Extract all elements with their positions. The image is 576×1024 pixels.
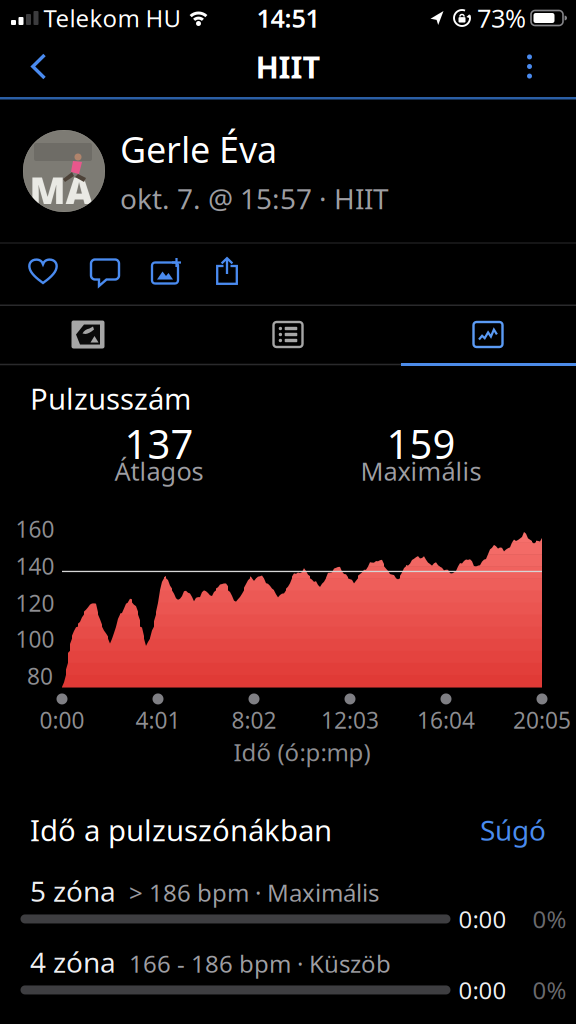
staticText: 140 — [15, 551, 54, 581]
staticText: Maximális — [360, 454, 481, 488]
staticText: 120 — [15, 588, 54, 618]
staticText: 137 — [124, 417, 193, 470]
staticText: Átlagos — [114, 454, 203, 488]
button[interactable]: Stats — [192, 306, 384, 363]
staticText: Pulzusszám — [30, 379, 191, 418]
staticText: 4 zóna — [30, 943, 116, 981]
staticText: 8:02 — [231, 705, 276, 735]
staticText: 0:00 — [458, 903, 506, 935]
staticText: 0% — [532, 974, 566, 1006]
staticText: Telekom HU — [43, 2, 181, 34]
staticText: 100 — [15, 624, 54, 654]
staticText: 0:00 — [458, 974, 506, 1006]
staticText: Idő (ó:p:mp) — [233, 736, 370, 768]
button[interactable]: Add photo — [119, 243, 182, 304]
staticText: HIIT — [255, 46, 320, 87]
staticText: 160 — [15, 514, 54, 544]
staticText: 80 — [27, 661, 53, 691]
button[interactable]: More — [527, 36, 576, 97]
staticText: 0:00 — [39, 705, 84, 735]
staticText: Idő a pulzuszónákban — [30, 810, 332, 849]
staticText: 14:51 — [256, 1, 319, 35]
button[interactable]: Back — [0, 36, 46, 96]
staticText: Gerle Éva — [120, 125, 277, 173]
button[interactable]: Charts — [384, 306, 576, 363]
staticText: 20:05 — [513, 705, 571, 735]
staticText: > 186 bpm · Maximális — [129, 877, 379, 908]
staticText: 12:03 — [321, 705, 379, 735]
staticText: 5 zóna — [30, 872, 116, 910]
button[interactable]: Comment — [58, 243, 119, 304]
staticText: okt. 7. @ 15:57 · HIIT — [120, 180, 389, 217]
staticText: 4:01 — [135, 705, 180, 735]
staticText: Súgó — [480, 811, 546, 849]
staticText: 166 - 186 bpm · Küszöb — [129, 948, 391, 979]
button[interactable]: Share — [182, 244, 238, 304]
button[interactable]: Súgó — [480, 811, 576, 849]
staticText: 16:04 — [417, 705, 475, 735]
staticText: 73% — [477, 1, 526, 35]
staticText: MA — [29, 165, 92, 215]
button[interactable]: Snapshots — [0, 306, 192, 363]
staticText: 0% — [532, 903, 566, 935]
button[interactable]: Like — [0, 243, 58, 305]
staticText: 159 — [386, 417, 455, 470]
